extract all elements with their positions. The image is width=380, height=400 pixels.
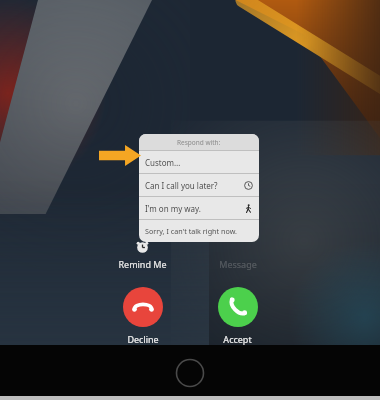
button[interactable]: Can I call you later? xyxy=(139,174,259,196)
button[interactable]: Sorry, I can't talk right now. xyxy=(139,220,259,242)
staticText: Accept xyxy=(223,333,252,345)
other: Home xyxy=(175,358,205,388)
other: Pointer xyxy=(99,145,141,166)
staticText: Sorry, I can't talk right now. xyxy=(145,226,253,236)
staticText: Respond with: xyxy=(177,138,221,147)
staticText: Remind Me xyxy=(118,258,167,270)
staticText: I'm on my way. xyxy=(145,203,244,214)
button[interactable]: Accept xyxy=(190,287,285,345)
staticText: Custom… xyxy=(145,157,253,168)
staticText: Message xyxy=(219,258,257,270)
button[interactable]: Decline xyxy=(95,287,190,345)
button[interactable]: Message xyxy=(190,240,285,270)
button[interactable]: I'm on my way. xyxy=(139,197,259,219)
button[interactable]: Custom… xyxy=(139,151,259,173)
button[interactable]: Remind Me xyxy=(95,240,190,270)
staticText: Decline xyxy=(127,333,159,345)
staticText: Can I call you later? xyxy=(145,180,244,191)
